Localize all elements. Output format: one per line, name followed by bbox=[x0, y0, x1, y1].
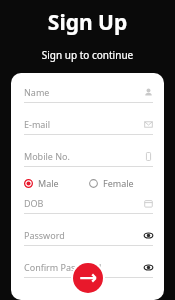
button[interactable]: Password bbox=[24, 229, 153, 246]
staticText: E-mail bbox=[24, 118, 144, 130]
staticText: Male bbox=[38, 177, 59, 189]
button[interactable]: Mobile No. bbox=[24, 150, 153, 167]
staticText: Female bbox=[103, 177, 134, 189]
staticText: Sign Up bbox=[0, 8, 175, 37]
staticText: Sign up to continue bbox=[0, 48, 175, 62]
staticText: DOB bbox=[24, 197, 144, 209]
staticText: Confirm Password bbox=[24, 261, 144, 273]
staticText: Mobile No. bbox=[24, 150, 144, 162]
button[interactable]: Confirm Password bbox=[24, 261, 153, 278]
button[interactable]: Submit sign up bbox=[73, 263, 103, 293]
button[interactable]: Name bbox=[24, 86, 153, 103]
button[interactable]: Female bbox=[89, 177, 134, 189]
button[interactable]: E-mail bbox=[24, 118, 153, 135]
button[interactable]: DOB bbox=[24, 197, 153, 214]
staticText: Password bbox=[24, 229, 144, 241]
staticText: Name bbox=[24, 86, 144, 98]
button[interactable]: Male bbox=[24, 177, 59, 189]
